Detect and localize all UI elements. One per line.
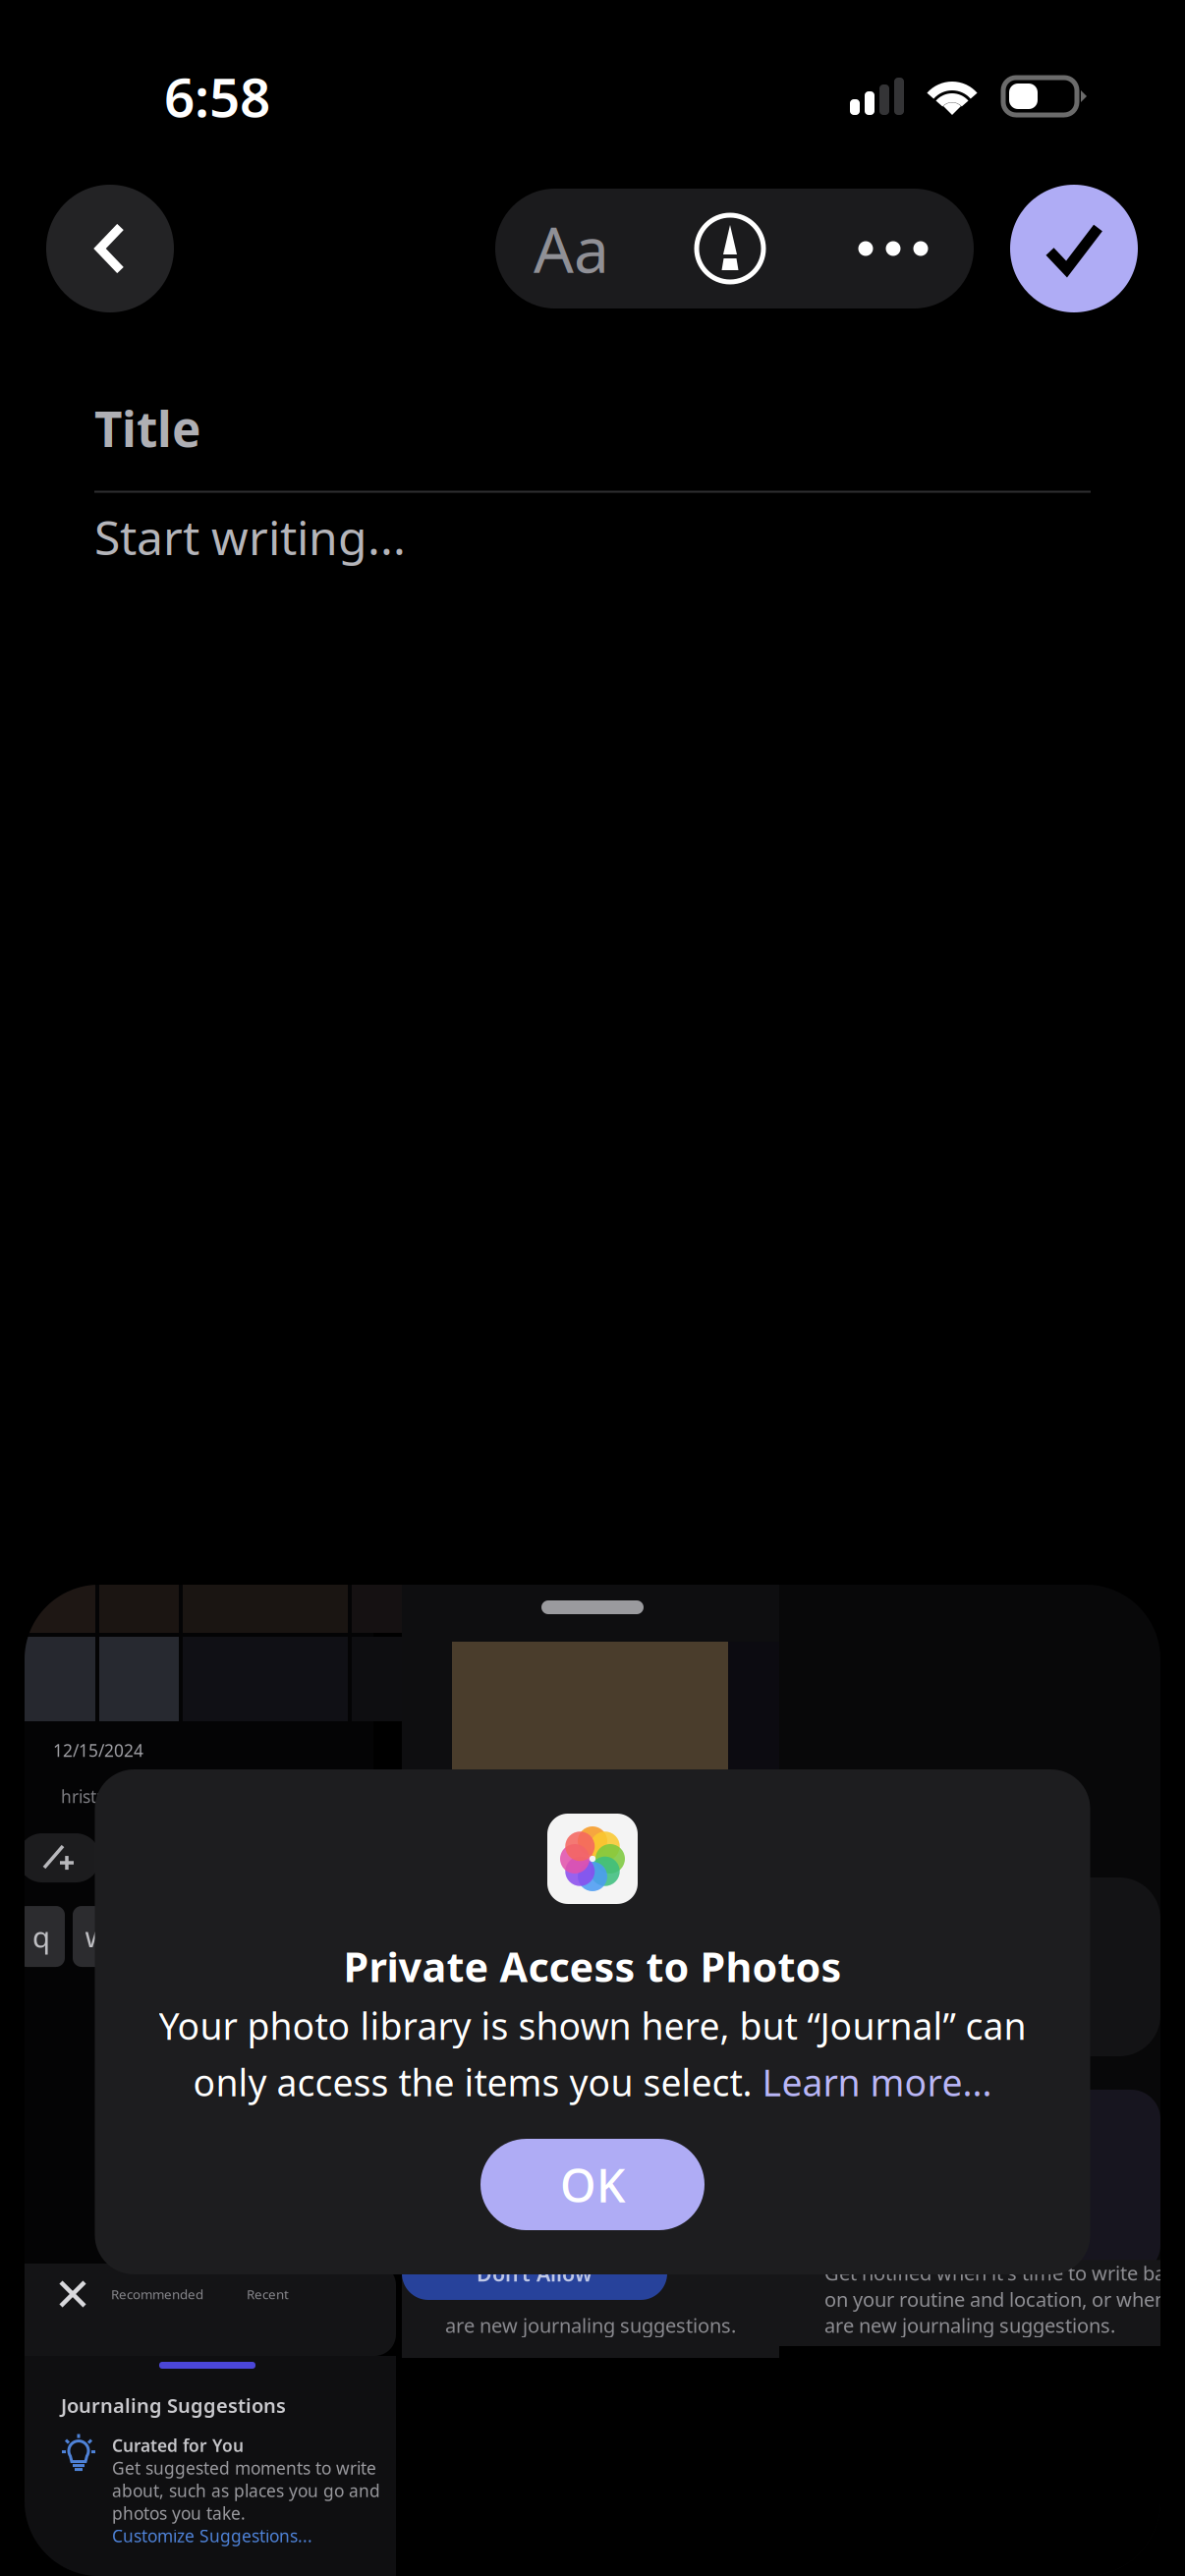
- staticText: w: [85, 1917, 108, 1956]
- staticText: Learn more...: [762, 2058, 992, 2106]
- button[interactable]: Done: [1010, 185, 1138, 312]
- staticText: Get notified when it’s time to write bas…: [824, 2260, 1185, 2286]
- staticText: photos you take.: [112, 2502, 246, 2525]
- staticText: only access the items you select.: [193, 2058, 762, 2106]
- button[interactable]: Text Format: [495, 189, 648, 308]
- staticText: Curated for You: [112, 2434, 244, 2457]
- staticText: Title: [94, 396, 200, 460]
- button[interactable]: Markup: [648, 189, 813, 308]
- staticText: Recommended: [111, 2285, 203, 2303]
- staticText: q: [32, 1917, 50, 1956]
- button[interactable]: OK: [480, 2139, 705, 2230]
- staticText: hristm: [61, 1785, 112, 1808]
- staticText: Recent: [247, 2285, 289, 2303]
- staticText: are new journaling suggestions.: [824, 2312, 1115, 2338]
- staticText: Customize Suggestions...: [112, 2525, 312, 2547]
- staticText: Start writing...: [94, 505, 406, 568]
- staticText: 12/15/2024: [53, 1739, 143, 1762]
- staticText: OK: [560, 2154, 625, 2215]
- button[interactable]: Learn more...: [762, 2058, 992, 2106]
- staticText: are new journaling suggestions.: [445, 2312, 736, 2338]
- staticText: Your photo library is shown here, but “J…: [159, 2001, 1026, 2050]
- staticText: Get suggested moments to write: [112, 2457, 376, 2479]
- button[interactable]: Back: [46, 185, 174, 312]
- button[interactable]: More: [813, 189, 974, 308]
- staticText: Don’t Allow: [477, 2259, 592, 2287]
- staticText: about, such as places you go and: [112, 2479, 380, 2502]
- staticText: 6:58: [164, 61, 270, 132]
- staticText: Journaling Suggestions: [61, 2392, 286, 2418]
- staticText: Aa: [534, 207, 609, 290]
- staticText: Private Access to Photos: [343, 1939, 842, 1993]
- staticText: on your routine and location, or when th…: [824, 2286, 1185, 2312]
